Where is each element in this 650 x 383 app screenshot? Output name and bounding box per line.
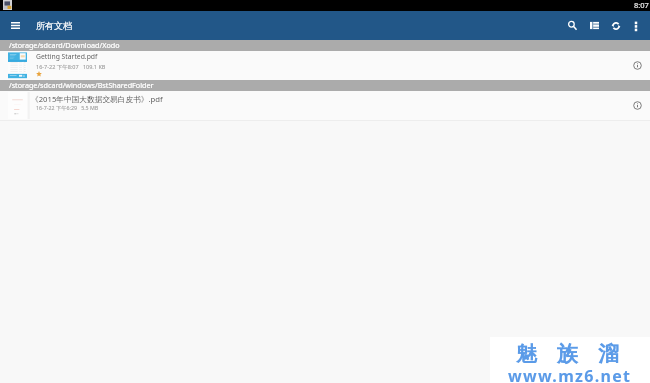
button[interactable]: File info (624, 91, 650, 120)
button[interactable]: 《2015年中国大数据交易白皮书》.pdf (0, 91, 650, 120)
staticText: 魅族溜 (506, 341, 629, 367)
staticText: /storage/sdcard/windows/BstSharedFolder (9, 80, 154, 90)
button[interactable]: Switch view (583, 11, 605, 40)
staticText: 16-7-22 下午6:29 5.5 MB (36, 104, 99, 111)
button[interactable]: More options (627, 11, 645, 40)
staticText: 8:07 (634, 0, 649, 8)
button[interactable]: Getting Started.pdf (0, 51, 650, 80)
staticText: www.mz6.net (508, 365, 632, 383)
button[interactable]: Refresh (605, 11, 627, 40)
button[interactable]: Search (561, 11, 583, 40)
staticText: 所有文档 (36, 20, 72, 31)
button[interactable]: Open navigation drawer (0, 11, 30, 40)
button[interactable]: /storage/sdcard/windows/BstSharedFolder (0, 80, 650, 91)
staticText: /storage/sdcard/Download/Xodo (9, 40, 120, 50)
staticText: 《2015年中国大数据交易白皮书》.pdf (31, 94, 163, 105)
button[interactable]: File info (624, 51, 650, 80)
staticText: 16-7-22 下午8:07 109.1 KB (36, 63, 106, 71)
staticText: Getting Started.pdf (36, 52, 98, 61)
button[interactable]: /storage/sdcard/Download/Xodo (0, 40, 650, 51)
